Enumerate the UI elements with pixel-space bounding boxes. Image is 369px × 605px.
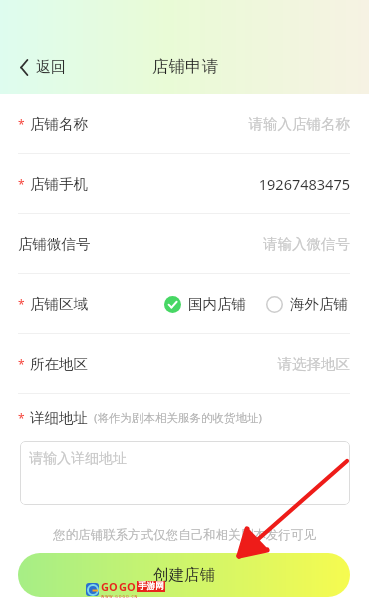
button[interactable]: 请输入详细地址 (20, 441, 350, 505)
staticText: * (18, 410, 25, 426)
staticText: GO (101, 579, 118, 594)
staticText: 店铺名称 (30, 115, 88, 133)
staticText: 请输入店铺名称 (96, 115, 350, 133)
staticText: 所在地区 (30, 355, 88, 373)
staticText: GO (119, 579, 136, 594)
staticText: * (18, 176, 25, 192)
staticText: * (18, 356, 25, 372)
staticText: 详细地址 (30, 409, 88, 427)
staticText: 请选择地区 (96, 355, 350, 373)
staticText: 创建店铺 (153, 565, 215, 585)
button[interactable]: 店铺微信号 (0, 214, 369, 274)
staticText: * (18, 116, 25, 132)
staticText: 店铺区域 (30, 295, 88, 313)
button[interactable]: * (0, 154, 369, 214)
button[interactable]: * (0, 94, 369, 154)
staticText: 店铺微信号 (18, 235, 91, 253)
other: 返回 (20, 60, 29, 75)
staticText: 店铺申请 (152, 56, 218, 77)
staticText: 您的店铺联系方式仅您自己和相关剧本发行可见 (0, 527, 369, 543)
staticText: 手游网 (138, 581, 164, 592)
staticText: 店铺手机 (30, 175, 88, 193)
button[interactable]: 国内店铺 (162, 289, 248, 319)
staticText: 请输入微信号 (99, 235, 350, 253)
staticText: 19267483475 (96, 174, 350, 194)
button[interactable]: 返回 (16, 54, 70, 81)
staticText: 国内店铺 (188, 295, 246, 313)
button[interactable]: 创建店铺 (18, 553, 350, 597)
staticText: (将作为剧本相关服务的收货地址) (94, 410, 262, 426)
staticText: 返回 (36, 58, 66, 77)
staticText: 海外店铺 (290, 295, 348, 313)
staticText: 请输入详细地址 (29, 450, 127, 468)
button[interactable]: * (0, 334, 369, 394)
staticText: W W W . G O G O . C N (101, 594, 138, 599)
staticText: * (18, 296, 25, 312)
button[interactable]: 海外店铺 (264, 289, 350, 319)
